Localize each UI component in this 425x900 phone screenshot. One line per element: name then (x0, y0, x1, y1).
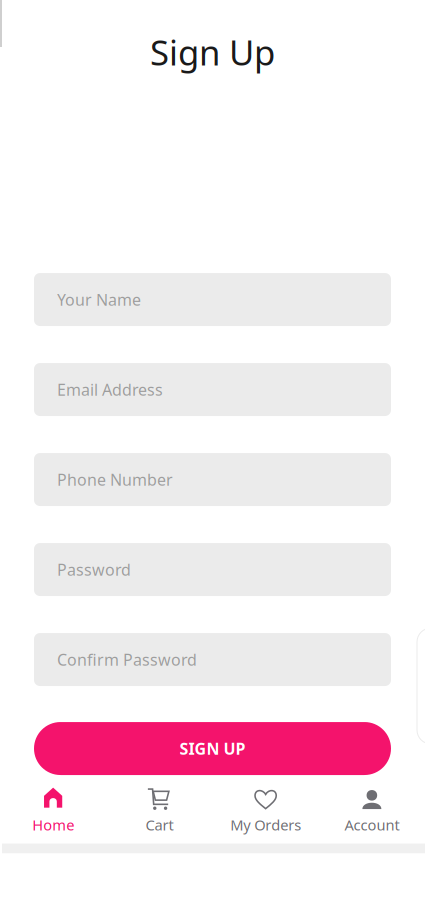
button[interactable]: Your Name (34, 273, 391, 326)
button[interactable]: Home (0, 775, 106, 843)
button[interactable]: Email Address (34, 363, 391, 416)
staticText: My Orders (230, 815, 301, 834)
staticText: Account (344, 815, 399, 834)
button[interactable]: Phone Number (34, 453, 391, 506)
staticText: Password (57, 559, 131, 580)
button[interactable]: Cart (106, 775, 212, 843)
staticText: SIGN UP (179, 738, 245, 759)
staticText: Cart (145, 815, 173, 834)
staticText: Confirm Password (57, 649, 197, 670)
button[interactable]: Account (319, 775, 425, 843)
button[interactable]: SIGN UP (34, 722, 391, 775)
staticText: Home (32, 815, 74, 834)
button[interactable]: Password (34, 543, 391, 596)
staticText: Sign Up (150, 29, 275, 75)
button[interactable]: My Orders (212, 775, 319, 843)
button[interactable]: Confirm Password (34, 633, 391, 686)
staticText: Phone Number (57, 469, 173, 490)
staticText: Your Name (57, 289, 141, 310)
staticText: Email Address (57, 379, 163, 400)
